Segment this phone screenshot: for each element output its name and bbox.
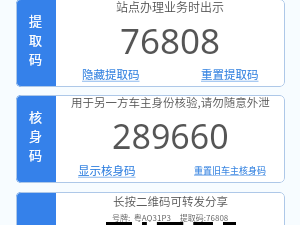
button[interactable]: QR code [106, 222, 236, 225]
staticText: 长按二维码可转发分享 [113, 193, 228, 210]
staticText: 用于另一方车主身份核验,请勿随意外泄 [71, 95, 270, 111]
staticText: 号牌: 粤AQ31P3 提取码:76808 [112, 212, 229, 224]
staticText: 重置提取码 [201, 66, 259, 83]
button[interactable]: 显示核身码 [78, 162, 136, 179]
staticText: 站点办理业务时出示 [116, 0, 225, 15]
button[interactable]: 重置旧车主核身码 [194, 164, 267, 177]
staticText: 重置旧车主核身码 [194, 164, 267, 177]
staticText: 显示核身码 [78, 162, 136, 179]
staticText: 码 [29, 49, 43, 68]
staticText: 76808 [120, 17, 221, 65]
staticText: 取 [29, 30, 43, 49]
staticText: 身 [29, 126, 43, 145]
staticText: 提 [29, 11, 43, 30]
staticText: 码 [29, 145, 43, 164]
staticText: 隐藏提取码 [82, 66, 140, 83]
button[interactable]: 重置提取码 [201, 66, 259, 83]
button[interactable]: 隐藏提取码 [82, 66, 140, 83]
staticText: 核 [29, 107, 43, 126]
staticText: 289660 [112, 113, 229, 159]
